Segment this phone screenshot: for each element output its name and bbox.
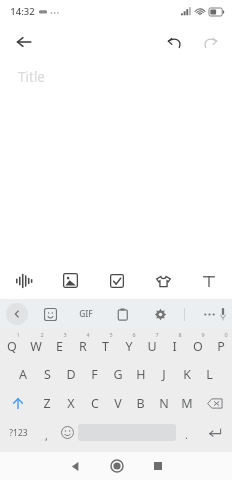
- button[interactable]: G: [106, 360, 129, 389]
- button[interactable]: Text format: [186, 262, 232, 299]
- staticText: 7: [155, 331, 159, 338]
- button[interactable]: Voice input: [220, 303, 226, 325]
- button[interactable]: D: [59, 360, 83, 389]
- staticText: F: [91, 366, 98, 383]
- button[interactable]: F: [83, 360, 106, 389]
- staticText: 5: [109, 331, 113, 338]
- staticText: Z: [43, 395, 51, 412]
- staticText: T: [102, 338, 109, 355]
- staticText: 4: [86, 331, 90, 338]
- button[interactable]: Enter: [197, 418, 232, 447]
- button[interactable]: ?123: [0, 418, 36, 447]
- staticText: H: [136, 366, 146, 383]
- button[interactable]: .: [176, 418, 197, 447]
- staticText: 2: [40, 331, 44, 338]
- button[interactable]: I: [163, 329, 186, 360]
- button[interactable]: Redo: [194, 26, 226, 58]
- button[interactable]: B: [129, 389, 152, 418]
- button[interactable]: R: [71, 329, 94, 360]
- button[interactable]: S: [35, 360, 59, 389]
- button[interactable]: X: [59, 389, 83, 418]
- button[interactable]: ,: [36, 418, 57, 447]
- staticText: .: [185, 427, 188, 442]
- button[interactable]: L: [198, 360, 221, 389]
- staticText: S: [44, 366, 51, 383]
- staticText: 9: [201, 331, 205, 338]
- button[interactable]: Image: [47, 262, 94, 299]
- button[interactable]: A: [11, 360, 35, 389]
- staticText: 3: [63, 331, 67, 338]
- staticText: J: [162, 366, 166, 383]
- button[interactable]: Settings: [149, 303, 171, 325]
- staticText: X: [67, 395, 75, 412]
- button[interactable]: Shift: [0, 389, 35, 418]
- staticText: I: [172, 338, 177, 355]
- staticText: A: [19, 366, 27, 383]
- button[interactable]: Emoji: [57, 418, 78, 447]
- staticText: B: [136, 395, 145, 412]
- button[interactable]: More options: [198, 303, 220, 325]
- staticText: 1: [16, 331, 20, 338]
- staticText: R: [79, 338, 87, 355]
- button[interactable]: Home: [96, 452, 137, 480]
- staticText: N: [159, 395, 169, 412]
- button[interactable]: Audio: [0, 262, 47, 299]
- button[interactable]: O: [186, 329, 209, 360]
- staticText: O: [193, 338, 203, 355]
- staticText: K: [183, 366, 191, 383]
- staticText: W: [30, 338, 42, 355]
- staticText: ?123: [9, 427, 28, 439]
- button[interactable]: GIF: [75, 303, 97, 325]
- staticText: Title: [18, 68, 45, 86]
- button[interactable]: Backspace: [198, 389, 232, 418]
- staticText: L: [206, 366, 213, 383]
- staticText: Q: [7, 338, 17, 355]
- button[interactable]: Recents: [137, 452, 178, 480]
- button[interactable]: T: [94, 329, 117, 360]
- button[interactable]: Z: [35, 389, 59, 418]
- button[interactable]: Q: [0, 329, 24, 360]
- staticText: C: [91, 395, 99, 412]
- staticText: GIF: [79, 308, 93, 320]
- button[interactable]: Clipboard: [111, 303, 133, 325]
- staticText: 8: [178, 331, 182, 338]
- button[interactable]: Undo: [158, 26, 190, 58]
- button[interactable]: H: [129, 360, 152, 389]
- staticText: G: [113, 366, 123, 383]
- staticText: U: [147, 338, 157, 355]
- button[interactable]: U: [140, 329, 163, 360]
- staticText: 0: [224, 331, 228, 338]
- button[interactable]: M: [175, 389, 198, 418]
- staticText: 14:32: [10, 5, 35, 18]
- button[interactable]: E: [48, 329, 71, 360]
- staticText: 6: [132, 331, 136, 338]
- button[interactable]: Y: [117, 329, 140, 360]
- staticText: M: [181, 395, 193, 412]
- button[interactable]: Back: [6, 24, 42, 60]
- button[interactable]: Checklist: [94, 262, 140, 299]
- button[interactable]: N: [152, 389, 175, 418]
- button[interactable]: K: [175, 360, 198, 389]
- staticText: V: [114, 395, 122, 412]
- button[interactable]: P: [209, 329, 232, 360]
- staticText: ,: [45, 428, 48, 443]
- button[interactable]: J: [152, 360, 175, 389]
- button[interactable]: Collapse toolbar: [6, 303, 28, 325]
- button[interactable]: Back: [55, 452, 96, 480]
- staticText: E: [56, 338, 63, 355]
- button[interactable]: Stickers: [39, 303, 61, 325]
- staticText: Y: [125, 338, 133, 355]
- button[interactable]: V: [106, 389, 129, 418]
- staticText: P: [217, 338, 225, 355]
- button[interactable]: W: [24, 329, 48, 360]
- button[interactable]: C: [83, 389, 106, 418]
- button[interactable]: Sticker: [140, 262, 186, 299]
- staticText: D: [66, 366, 76, 383]
